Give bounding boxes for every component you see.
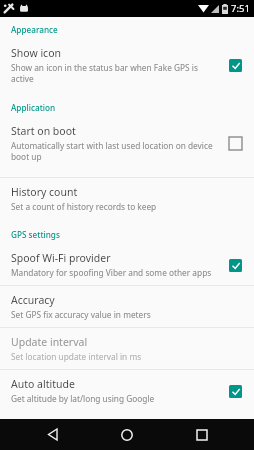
button[interactable]: Checked [224,254,246,276]
staticText: Show an icon in the status bar when Fake… [11,62,198,84]
staticText: 7:51 [231,2,250,15]
staticText: Automatically start with last used locat… [11,140,213,162]
button[interactable]: Accuracy [0,286,254,327]
staticText: Set location update interval in ms [11,351,142,362]
button[interactable]: Recents [180,419,224,450]
staticText: Set GPS fix accuracy value in meters [11,309,151,320]
button[interactable]: Spoof Wi-Fi provider [0,244,254,285]
staticText: Show icon [11,46,61,60]
staticText: Start on boot [11,124,76,138]
staticText: GPS settings [11,229,60,240]
button[interactable]: Auto altitude [0,370,254,411]
staticText: Accuracy [11,293,55,307]
staticText: Application [11,102,56,113]
button[interactable]: Checked [224,54,246,76]
button[interactable]: Update interval [0,328,254,369]
button[interactable]: History count [0,178,254,219]
button[interactable]: Back [31,419,75,450]
button[interactable]: Show icon [0,39,254,91]
staticText: Set a count of history records to keep [11,201,157,212]
staticText: Spoof Wi-Fi provider [11,251,111,265]
button[interactable]: Start on boot [0,117,254,169]
button[interactable]: Unchecked [224,132,246,154]
button[interactable]: Home [105,419,149,450]
staticText: Mandatory for spoofing Viber and some ot… [11,267,212,278]
staticText: Update interval [11,335,88,349]
button[interactable]: Checked [224,380,246,402]
staticText: History count [11,185,78,199]
staticText: Get altitude by lat/long using Google [11,393,155,404]
staticText: Appearance [11,24,58,35]
staticText: Auto altitude [11,377,75,391]
